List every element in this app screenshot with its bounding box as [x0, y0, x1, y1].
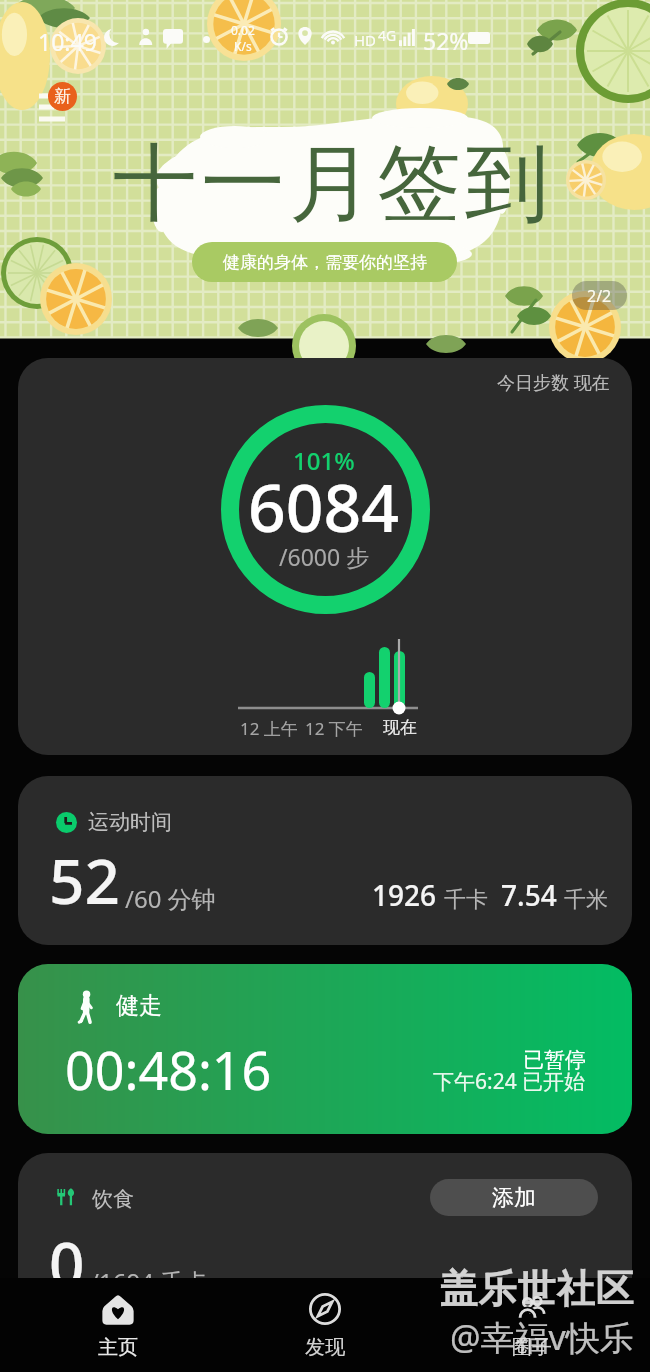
staticText: 千米 — [564, 886, 608, 914]
staticText: 7.54 — [501, 876, 557, 914]
button[interactable]: 10:49 — [0, 0, 650, 338]
staticText: 添加 — [492, 1184, 536, 1212]
button[interactable]: 运动时间 — [18, 776, 632, 945]
staticText: 0 — [49, 1221, 85, 1305]
staticText: 十一月签到 — [111, 131, 551, 237]
staticText: 盖乐世社区 — [439, 1265, 634, 1313]
staticText: 下午6:24 已开始 — [433, 1067, 586, 1096]
staticText: /60 分钟 — [125, 882, 216, 915]
staticText: 6084 — [248, 461, 400, 551]
staticText: /6000 步 — [279, 541, 370, 572]
staticText: 2/2 — [587, 285, 612, 307]
staticText: HD — [354, 30, 377, 50]
staticText: @幸福v快乐 — [450, 1314, 634, 1360]
staticText: 52% — [423, 25, 469, 56]
button[interactable]: 饮食 — [18, 1153, 632, 1323]
button[interactable]: 今日步数 现在 — [18, 358, 632, 755]
button[interactable]: Community — [462, 1278, 602, 1372]
staticText: 健走 — [116, 991, 162, 1020]
button[interactable]: Discover — [255, 1278, 395, 1372]
button[interactable]: Home — [48, 1278, 188, 1372]
staticText: 0.02 — [231, 22, 255, 38]
staticText: 圈子 — [512, 1335, 552, 1360]
staticText: 4G — [378, 26, 397, 45]
button[interactable]: 添加 — [430, 1179, 598, 1216]
staticText: 12 上午 — [240, 717, 298, 740]
staticText: 00:48:16 — [65, 1034, 272, 1105]
staticText: 12 下午 — [305, 717, 363, 740]
staticText: 已暂停 — [523, 1047, 586, 1073]
staticText: 1926 — [372, 876, 437, 914]
staticText: 千卡 — [444, 886, 488, 914]
button[interactable]: 健走 — [18, 964, 632, 1134]
staticText: 今日步数 现在 — [497, 370, 610, 395]
staticText: 新 — [54, 86, 71, 107]
staticText: 10:49 — [38, 26, 97, 57]
staticText: 101% — [293, 444, 355, 477]
staticText: K/s — [234, 38, 252, 54]
staticText: 52 — [49, 838, 120, 922]
staticText: 健康的身体，需要你的坚持 — [223, 252, 427, 273]
button[interactable]: 健康的身体，需要你的坚持 — [192, 242, 457, 282]
staticText: /1694 千卡 — [90, 1265, 209, 1298]
staticText: 现在 — [383, 717, 417, 738]
staticText: 主页 — [98, 1335, 138, 1360]
staticText: 饮食 — [92, 1186, 134, 1212]
staticText: 运动时间 — [88, 809, 172, 835]
button[interactable]: New — [48, 82, 77, 111]
staticText: 发现 — [305, 1335, 345, 1360]
